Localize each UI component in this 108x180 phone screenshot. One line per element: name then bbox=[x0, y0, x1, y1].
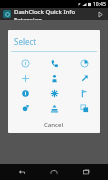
button[interactable]: Info bbox=[12, 56, 38, 71]
button[interactable]: Phone bbox=[41, 56, 67, 71]
button[interactable]: Copy bbox=[71, 101, 97, 116]
button[interactable]: Settings bbox=[12, 101, 38, 116]
button[interactable]: Back bbox=[12, 164, 32, 180]
staticText: Cancel bbox=[44, 121, 64, 129]
button[interactable]: Person bbox=[41, 71, 67, 86]
button[interactable]: Home bbox=[44, 164, 64, 180]
button[interactable]: Cancel bbox=[8, 119, 100, 131]
staticText: Select bbox=[14, 36, 37, 47]
button[interactable]: Battery bbox=[12, 86, 38, 101]
staticText: DashClock Quick Info Extension bbox=[14, 8, 95, 20]
button[interactable]: Link bbox=[71, 71, 97, 86]
button[interactable]: Flag bbox=[71, 86, 97, 101]
button[interactable]: Add bbox=[12, 71, 38, 86]
button[interactable]: Next bbox=[95, 9, 105, 19]
staticText: 10:45 bbox=[93, 1, 106, 8]
button[interactable]: Clock bbox=[71, 56, 97, 71]
button[interactable]: Upload bbox=[41, 101, 67, 116]
button[interactable]: Star bbox=[41, 86, 67, 101]
button[interactable]: Recent apps bbox=[76, 164, 96, 180]
